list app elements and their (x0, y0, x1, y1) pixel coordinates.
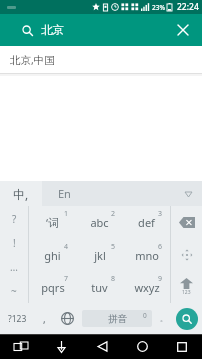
staticText: wxyz (134, 280, 160, 295)
button[interactable]: ~ (0, 279, 28, 303)
staticText: 23% (152, 3, 165, 12)
staticText: jkl (94, 248, 106, 263)
button[interactable]: Clear (172, 19, 194, 41)
staticText: 9 (158, 274, 163, 284)
staticText: ?123 (8, 313, 27, 325)
staticText: ~ (11, 284, 17, 298)
staticText: 5 (111, 242, 116, 252)
staticText: 拼音 (108, 313, 127, 325)
staticText: … (10, 260, 18, 274)
button[interactable]: ! (0, 231, 28, 255)
staticText: 1 (64, 209, 69, 219)
staticText: 6 (158, 242, 163, 252)
button[interactable]: Change language (54, 303, 80, 334)
button[interactable]: Move cursor (171, 239, 202, 271)
button[interactable]: … (0, 255, 28, 279)
button[interactable]: 北京,中国 (0, 46, 202, 73)
other: Search (22, 25, 33, 36)
button[interactable]: Hide keyboard (41, 334, 82, 359)
staticText: 2 (111, 209, 116, 219)
button[interactable]: wxyz (123, 271, 170, 303)
staticText: 中, (13, 186, 29, 202)
button[interactable]: ?123 (0, 303, 34, 334)
staticText: 7 (64, 274, 69, 284)
staticText: abc (90, 215, 109, 230)
staticText: ! (13, 236, 16, 250)
button[interactable]: ‘词 (29, 206, 76, 239)
button[interactable]: abc (76, 206, 123, 239)
button[interactable]: ? (0, 206, 28, 231)
button[interactable]: Back (82, 334, 122, 359)
button[interactable]: def (123, 206, 170, 239)
button[interactable]: Recents (162, 334, 202, 359)
staticText: ? (12, 212, 17, 226)
staticText: 北京,中国 (10, 53, 55, 67)
staticText: tuv (91, 280, 108, 295)
button[interactable]: En (42, 181, 202, 206)
button[interactable]: Search (176, 308, 198, 330)
staticText: mno (135, 248, 159, 263)
button[interactable]: , (34, 303, 54, 334)
button[interactable]: tuv (76, 271, 123, 303)
button[interactable]: mno (123, 239, 170, 271)
button[interactable]: Switch keyboard (0, 334, 41, 359)
staticText: def (138, 215, 155, 230)
staticText: 4 (64, 242, 69, 252)
staticText: 。 (160, 314, 167, 323)
staticText: 0 (143, 311, 147, 320)
staticText: , (43, 312, 46, 326)
button[interactable]: Home (122, 334, 162, 359)
staticText: 北京 (41, 23, 64, 37)
button[interactable]: Backspace (171, 206, 202, 239)
button[interactable]: 中, (0, 181, 42, 206)
button[interactable]: ghi (29, 239, 76, 271)
button[interactable]: 拼音 (82, 310, 152, 327)
staticText: 22:24 (177, 1, 199, 13)
staticText: ‘词 (46, 215, 59, 230)
staticText: 3 (158, 209, 163, 219)
button[interactable]: pqrs (29, 271, 76, 303)
staticText: 123 (182, 289, 191, 296)
staticText: pqrs (41, 280, 65, 295)
button[interactable]: Expand candidates (180, 186, 196, 202)
button[interactable]: Shift (171, 271, 202, 303)
staticText: En (58, 186, 71, 201)
button[interactable]: jkl (76, 239, 123, 271)
staticText: 8 (111, 274, 116, 284)
staticText: ghi (44, 248, 61, 263)
